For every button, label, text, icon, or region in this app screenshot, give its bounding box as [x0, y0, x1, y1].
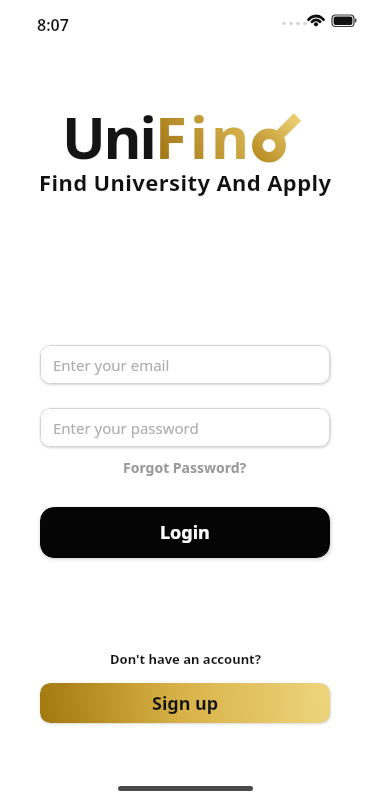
staticText: Sign up: [152, 691, 219, 716]
staticText: Enter your password: [53, 418, 199, 438]
staticText: Find University And Apply: [39, 167, 332, 197]
staticText: Don't have an account?: [110, 650, 261, 668]
staticText: Forgot Password?: [123, 458, 247, 477]
button[interactable]: Sign up: [40, 683, 330, 723]
button[interactable]: Enter your password: [40, 408, 330, 447]
staticText: 8:07: [37, 14, 69, 36]
staticText: Fin: [155, 97, 253, 176]
button[interactable]: Login: [40, 507, 330, 558]
button[interactable]: Enter your email: [40, 345, 330, 384]
staticText: Login: [160, 520, 210, 545]
staticText: Enter your email: [53, 355, 170, 375]
staticText: Uni: [62, 97, 155, 176]
button[interactable]: Forgot Password?: [123, 458, 247, 477]
